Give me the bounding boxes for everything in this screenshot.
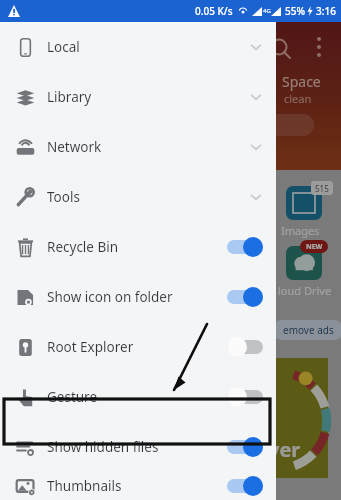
- button[interactable]: Thumbnails: [0, 472, 276, 500]
- staticText: Local: [47, 38, 80, 56]
- button[interactable]: Show icon on folder: [0, 272, 276, 322]
- staticText: 55%: [285, 4, 305, 18]
- staticText: ver: [268, 436, 301, 463]
- button[interactable]: Library: [0, 72, 276, 122]
- staticText: emove ads: [283, 323, 334, 337]
- button[interactable]: Search: [262, 30, 296, 64]
- staticText: Recycle Bin: [47, 238, 119, 256]
- staticText: Network: [47, 138, 102, 156]
- button[interactable]: emove ads: [272, 320, 341, 340]
- staticText: 4G: [263, 7, 271, 15]
- button[interactable]: Root Explorer: [0, 322, 276, 372]
- staticText: Show icon on folder: [47, 288, 173, 306]
- button[interactable]: Gesture: [0, 372, 276, 422]
- button[interactable]: More options: [302, 30, 336, 64]
- staticText: Images: [281, 223, 320, 238]
- staticText: Library: [47, 88, 92, 106]
- button[interactable]: [258, 114, 314, 136]
- button[interactable]: Local: [0, 22, 276, 72]
- staticText: NEW: [306, 242, 323, 252]
- staticText: Root Explorer: [47, 338, 134, 356]
- staticText: Tools: [47, 188, 80, 206]
- staticText: loud Drive: [278, 283, 332, 298]
- staticText: Gesture: [47, 388, 98, 406]
- staticText: Show hidden files: [47, 438, 159, 456]
- staticText: 0.05 K/s: [195, 4, 233, 18]
- button[interactable]: Show hidden files: [0, 422, 276, 472]
- staticText: 515: [315, 183, 329, 194]
- staticText: Thumbnails: [47, 477, 122, 495]
- staticText: clean: [284, 91, 312, 106]
- staticText: Space: [282, 72, 321, 91]
- button[interactable]: Network: [0, 122, 276, 172]
- staticText: 3:16: [316, 4, 336, 18]
- button[interactable]: Tools: [0, 172, 276, 222]
- button[interactable]: Recycle Bin: [0, 222, 276, 272]
